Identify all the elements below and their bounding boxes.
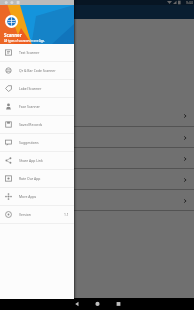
button[interactable]: Rate Our App (0, 170, 74, 187)
staticText: Version (19, 212, 31, 217)
button[interactable] (0, 190, 194, 211)
staticText: Qr & Bar Code Scanner (19, 68, 56, 73)
button[interactable]: Text Scanner (0, 44, 74, 61)
button[interactable]: Qr & Bar Code Scanner (0, 62, 74, 79)
button[interactable]: Version (0, 206, 74, 223)
button[interactable] (0, 127, 194, 148)
staticText: Saved Records (19, 122, 43, 127)
button[interactable]: More Apps (0, 188, 74, 205)
button[interactable]: Label Scanner (0, 80, 74, 97)
button[interactable]: Suggestions (0, 134, 74, 151)
button[interactable] (0, 148, 194, 169)
staticText: Share App Link (19, 158, 43, 163)
button[interactable]: Saved Records (0, 116, 74, 133)
button[interactable]: Face Scanner (0, 98, 74, 115)
staticText: Label Scanner (19, 86, 42, 91)
staticText: Suggestions (19, 140, 39, 145)
staticText: More Apps (19, 194, 37, 199)
staticText: Face Scanner (19, 104, 40, 109)
button[interactable]: Share App Link (0, 152, 74, 169)
button[interactable] (0, 169, 194, 190)
staticText: 9:44 (186, 0, 193, 5)
staticText: Text Scanner (19, 50, 40, 55)
staticText: Rate Our App (19, 176, 41, 181)
staticText: Scanner (4, 32, 22, 38)
staticText: All types of scanners in one App. (4, 39, 45, 43)
button[interactable] (0, 105, 194, 126)
staticText: 1.1 (64, 212, 69, 217)
